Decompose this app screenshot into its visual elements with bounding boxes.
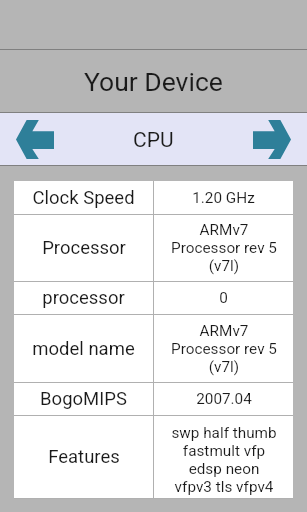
staticText: Processor [42, 237, 126, 259]
button[interactable]: Next [237, 113, 307, 165]
staticText: 0 [219, 289, 228, 307]
button[interactable]: Previous [0, 113, 70, 165]
staticText: 1.20 GHz [192, 189, 255, 207]
staticText: 2007.04 [196, 390, 252, 408]
staticText: Clock Speed [32, 187, 135, 209]
staticText: Features [48, 446, 120, 468]
staticText: Your Device [84, 66, 223, 97]
staticText: processor [42, 287, 125, 309]
staticText: ARMv7 Processor rev 5 (v7l) [171, 322, 277, 376]
staticText: ARMv7 Processor rev 5 (v7l) [171, 221, 277, 275]
staticText: CPU [133, 128, 174, 153]
staticText: BogoMIPS [40, 388, 127, 410]
staticText: swp half thumb fastmult vfp edsp neon vf… [171, 424, 277, 498]
staticText: model name [32, 338, 135, 360]
